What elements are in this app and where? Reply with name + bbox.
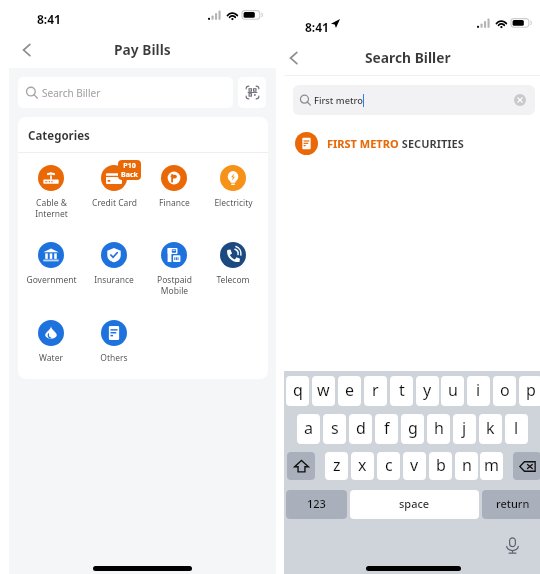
staticText: SECURITIES <box>399 136 464 151</box>
staticText: z <box>333 454 341 476</box>
staticText: 123 <box>307 496 326 511</box>
button[interactable]: Insurance <box>83 242 145 286</box>
staticText: r <box>372 379 379 401</box>
staticText: a <box>304 417 313 439</box>
button[interactable]: Backspace <box>513 452 540 480</box>
staticText: c <box>385 454 393 476</box>
staticText: 8:41 <box>305 19 329 35</box>
staticText: Insurance <box>94 274 134 286</box>
staticText: t <box>399 379 405 401</box>
button[interactable]: y <box>416 376 439 406</box>
button[interactable]: Finance <box>143 165 205 209</box>
staticText: v <box>410 454 419 476</box>
button[interactable]: i <box>467 376 490 406</box>
staticText: Telecom <box>216 274 250 286</box>
staticText: g <box>408 417 418 439</box>
button[interactable]: 123 <box>286 490 347 519</box>
staticText: FIRST METRO <box>327 136 399 151</box>
button[interactable]: Postpaid Mobile <box>143 242 205 296</box>
button[interactable]: Telecom <box>202 242 264 286</box>
staticText: return <box>496 496 530 511</box>
button[interactable]: d <box>349 414 372 444</box>
button[interactable]: P10 Back <box>83 165 145 209</box>
staticText: First metro <box>314 94 363 107</box>
button[interactable]: z <box>325 452 348 480</box>
staticText: Categories <box>28 128 90 144</box>
button[interactable]: Clear search <box>511 91 529 109</box>
button[interactable]: a <box>297 414 320 444</box>
button[interactable]: First metro <box>293 85 535 115</box>
button[interactable]: return <box>482 490 540 519</box>
button[interactable]: o <box>493 376 516 406</box>
button[interactable]: p <box>519 376 540 406</box>
button[interactable]: space <box>350 490 479 519</box>
button[interactable]: Back <box>17 33 45 61</box>
button[interactable]: w <box>312 376 335 406</box>
staticText: e <box>345 379 355 401</box>
staticText: u <box>448 379 458 401</box>
button[interactable]: g <box>401 414 424 444</box>
staticText: d <box>356 417 366 439</box>
button[interactable]: Shift <box>287 452 315 480</box>
staticText: Finance <box>159 197 190 209</box>
staticText: b <box>436 454 446 476</box>
staticText: P10 Back <box>121 161 138 179</box>
button[interactable]: v <box>403 452 426 480</box>
button[interactable]: k <box>479 414 502 444</box>
staticText: k <box>486 417 495 439</box>
staticText: m <box>484 454 499 476</box>
button[interactable]: Government <box>20 242 82 286</box>
button[interactable]: c <box>377 452 400 480</box>
staticText: Pay Bills <box>114 40 171 59</box>
button[interactable]: u <box>441 376 464 406</box>
staticText: h <box>434 417 444 439</box>
button[interactable]: t <box>390 376 413 406</box>
staticText: Electricity <box>214 197 253 209</box>
staticText: Postpaid Mobile <box>157 274 192 296</box>
button[interactable]: Dictate <box>502 535 522 555</box>
button[interactable]: Electricity <box>202 165 264 209</box>
button[interactable]: Cable & Internet <box>20 165 82 219</box>
staticText: i <box>476 379 481 401</box>
staticText: x <box>358 454 367 476</box>
button[interactable]: b <box>429 452 452 480</box>
staticText: Government <box>26 274 77 286</box>
staticText: q <box>293 379 303 401</box>
button[interactable]: Others <box>83 320 145 364</box>
staticText: 8:41 <box>37 11 61 27</box>
button[interactable]: x <box>351 452 374 480</box>
button[interactable]: q <box>286 376 309 406</box>
staticText: f <box>384 417 390 439</box>
staticText: Others <box>100 352 128 364</box>
staticText: Credit Card <box>92 197 137 209</box>
button[interactable]: Scan QR code <box>238 77 266 108</box>
button[interactable]: l <box>505 414 528 444</box>
staticText: Water <box>39 352 63 364</box>
button[interactable]: j <box>453 414 476 444</box>
button[interactable]: Back <box>284 41 312 69</box>
staticText: s <box>331 417 339 439</box>
staticText: Search Biller <box>365 48 451 67</box>
button[interactable]: r <box>364 376 387 406</box>
button[interactable]: FIRST METRO <box>295 127 526 160</box>
staticText: Cable & Internet <box>35 197 68 219</box>
staticText: space <box>399 496 430 511</box>
staticText: p <box>526 379 536 401</box>
button[interactable]: f <box>375 414 398 444</box>
staticText: o <box>500 379 510 401</box>
button[interactable]: m <box>480 452 503 480</box>
button[interactable]: n <box>455 452 478 480</box>
staticText: j <box>462 417 467 439</box>
staticText: l <box>514 417 519 439</box>
staticText: Search Biller <box>42 86 101 100</box>
button[interactable]: Water <box>20 320 82 364</box>
staticText: n <box>462 454 472 476</box>
button[interactable]: s <box>323 414 346 444</box>
button[interactable]: h <box>427 414 450 444</box>
staticText: y <box>423 379 432 401</box>
staticText: w <box>317 379 330 401</box>
button[interactable]: e <box>338 376 361 406</box>
button[interactable]: Search Biller <box>18 77 233 108</box>
